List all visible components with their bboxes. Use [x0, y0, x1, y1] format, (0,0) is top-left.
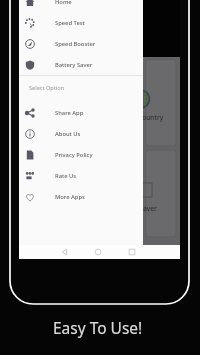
- staticText: Speed Test: [55, 19, 85, 27]
- button[interactable]: Recent apps: [125, 245, 139, 259]
- button[interactable]: Speed Booster: [19, 33, 143, 54]
- staticText: Select Option: [29, 84, 65, 92]
- staticText: Share App: [55, 109, 84, 117]
- button[interactable]: Speed Test: [19, 12, 143, 33]
- staticText: Speed Booster: [55, 40, 96, 48]
- button[interactable]: Privacy Policy: [19, 144, 143, 165]
- button[interactable]: More Apps: [19, 186, 143, 207]
- button[interactable]: Battery Saver: [19, 54, 143, 75]
- button[interactable]: Rate Us: [19, 165, 143, 186]
- staticText: About Us: [55, 130, 81, 138]
- button[interactable]: Back: [58, 245, 72, 259]
- staticText: Home: [55, 0, 72, 6]
- staticText: Battery Saver: [115, 204, 157, 213]
- button[interactable]: Share App: [19, 102, 143, 123]
- staticText: Easy To Use!: [53, 317, 143, 338]
- staticText: Select Country: [118, 113, 164, 122]
- button[interactable]: Home: [91, 245, 105, 259]
- staticText: Privacy Policy: [55, 151, 93, 159]
- button[interactable]: Home: [19, 0, 143, 12]
- staticText: Rate Us: [55, 172, 77, 180]
- staticText: Battery Saver: [55, 61, 93, 69]
- button[interactable]: About Us: [19, 123, 143, 144]
- staticText: More Apps: [55, 193, 85, 201]
